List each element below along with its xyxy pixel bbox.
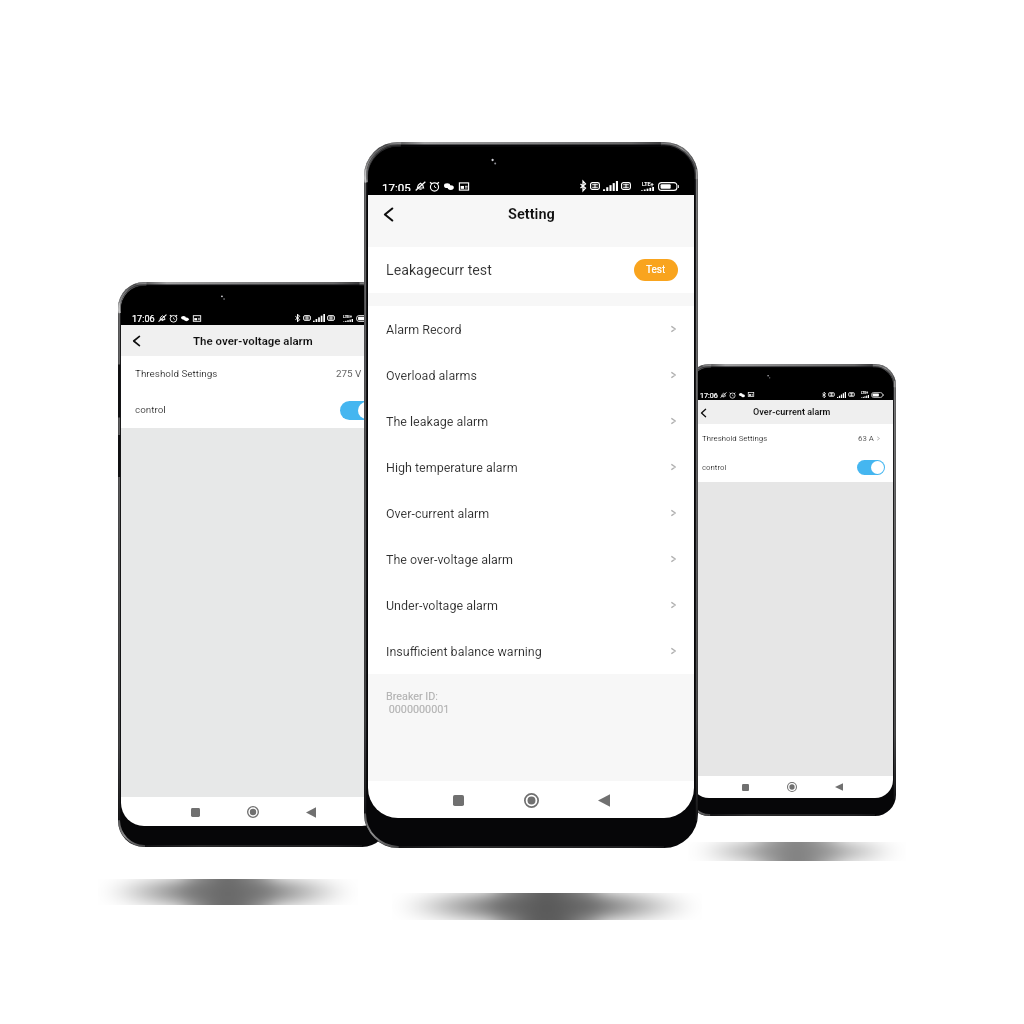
button[interactable]: Under-voltage alarm [368,582,694,628]
staticText: Test [646,264,666,276]
button[interactable]: High temperature alarm [368,444,694,490]
button[interactable]: control switch [857,460,885,475]
staticText: 17:05 [382,181,411,191]
button[interactable]: The leakage alarm [368,398,694,444]
staticText: High temperature alarm [386,460,518,475]
button[interactable]: Recents [737,779,753,795]
button[interactable]: control switch [340,401,376,420]
staticText: Breaker ID: [386,690,438,703]
staticText: 275 V [336,368,362,380]
button[interactable]: Threshold Settings [691,424,893,453]
button[interactable]: Home [784,779,800,795]
button[interactable]: Home [243,802,263,822]
button[interactable]: Overload alarms [368,352,694,398]
staticText: Setting [508,206,555,223]
staticText: control [702,463,727,472]
button[interactable]: Home [519,788,543,812]
button[interactable]: Back [127,331,146,350]
staticText: Threshold Settings [135,368,218,380]
staticText: The leakage alarm [386,414,489,429]
button[interactable]: Insufficient balance warning [368,628,694,674]
staticText: The over-voltage alarm [193,334,313,347]
staticText: 17:06 [700,391,718,398]
staticText: control [135,404,166,416]
button[interactable]: Threshold Settings [121,356,385,392]
button[interactable]: Test [634,259,678,281]
button[interactable]: Alarm Record [368,306,694,352]
button[interactable]: control [121,392,385,428]
staticText: Alarm Record [386,322,462,337]
staticText: Threshold Settings [702,434,768,443]
staticText: The over-voltage alarm [386,552,514,567]
staticText: Insufficient balance warning [386,644,542,659]
staticText: 0000000001 [386,703,450,716]
staticText: Over-current alarm [386,506,490,521]
button[interactable]: Back [592,788,616,812]
staticText: Under-voltage alarm [386,598,498,613]
button[interactable]: Recents [185,802,205,822]
staticText: LTE+ [861,391,869,395]
staticText: Leakagecurr test [386,262,492,279]
staticText: Overload alarms [386,368,477,383]
staticText: 63 A [858,434,874,443]
staticText: Over-current alarm [753,407,831,418]
staticText: LTE+ [343,314,353,319]
button[interactable]: Back [301,802,321,822]
button[interactable]: Recents [446,788,470,812]
staticText: 17:06 [132,314,155,322]
button[interactable]: Back [376,202,400,226]
staticText: LTE+ [642,181,654,187]
button[interactable]: The over-voltage alarm [368,536,694,582]
button[interactable]: Leakagecurr test [368,247,694,293]
button[interactable]: Back [696,405,711,420]
button[interactable]: Back [831,779,847,795]
button[interactable]: Over-current alarm [368,490,694,536]
button[interactable]: control [691,453,893,482]
